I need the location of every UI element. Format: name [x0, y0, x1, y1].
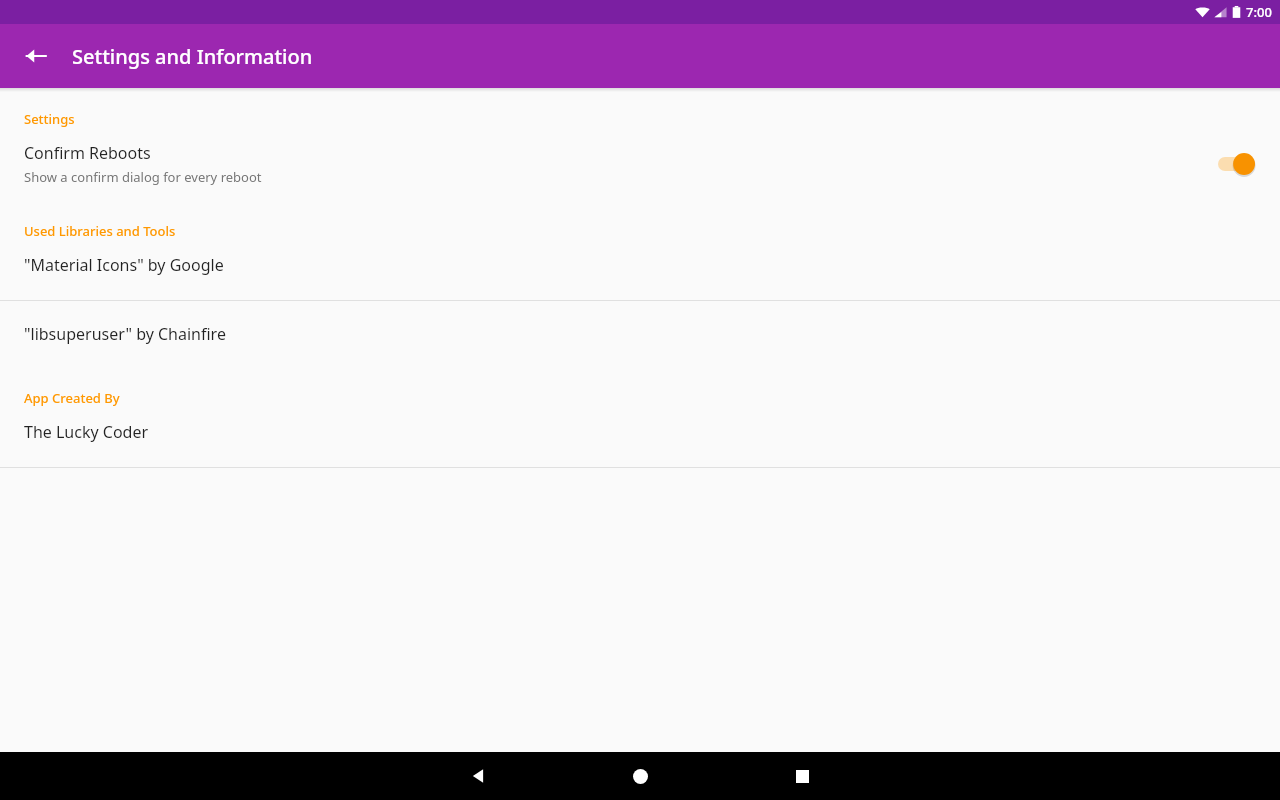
- button[interactable]: Confirm Reboots: [0, 134, 1280, 200]
- button[interactable]: Home: [616, 752, 664, 800]
- staticText: Used Libraries and Tools: [24, 222, 176, 240]
- staticText: Confirm Reboots: [24, 142, 151, 164]
- staticText: "Material Icons" by Google: [24, 254, 224, 276]
- staticText: The Lucky Coder: [24, 421, 149, 443]
- staticText: Show a confirm dialog for every reboot: [24, 168, 262, 186]
- staticText: Settings and Information: [72, 43, 313, 70]
- button[interactable]: Back: [12, 32, 60, 80]
- staticText: "libsuperuser" by Chainfire: [24, 323, 226, 345]
- button[interactable]: Confirm Reboots toggle: [1218, 151, 1256, 177]
- staticText: Settings: [24, 110, 75, 128]
- button[interactable]: The Lucky Coder: [0, 413, 1280, 467]
- staticText: App Created By: [24, 389, 120, 407]
- staticText: 7:00: [1246, 3, 1272, 21]
- button[interactable]: "Material Icons" by Google: [0, 246, 1280, 300]
- button[interactable]: Recent apps: [778, 752, 826, 800]
- button[interactable]: Back: [454, 752, 502, 800]
- button[interactable]: "libsuperuser" by Chainfire: [0, 301, 1280, 369]
